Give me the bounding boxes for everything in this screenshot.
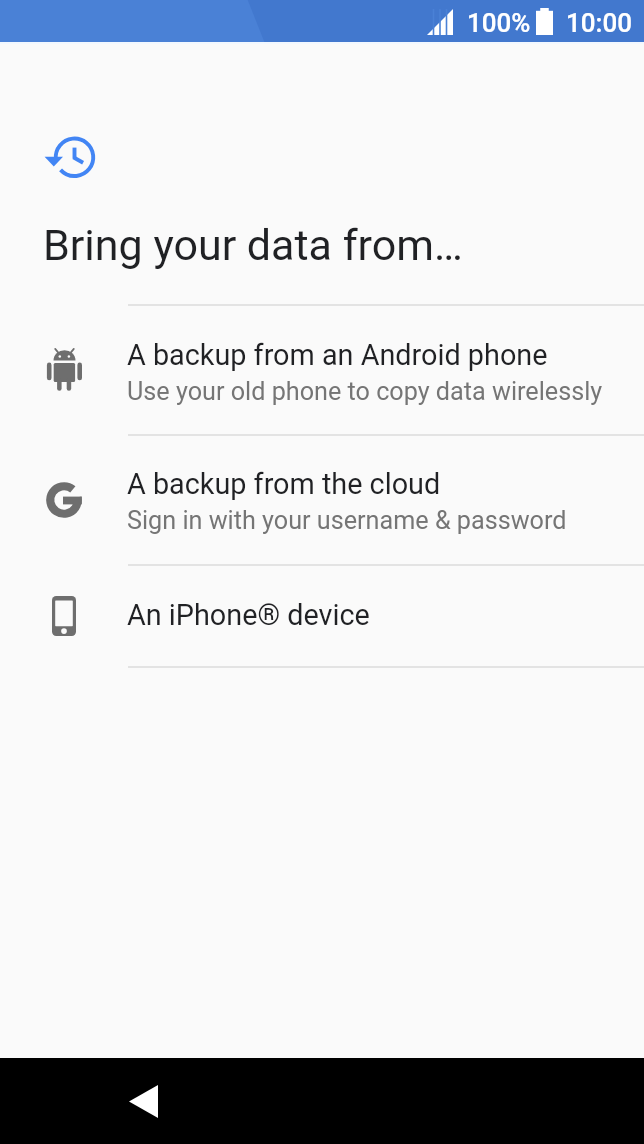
button[interactable]: Back: [107, 1065, 179, 1137]
button[interactable]: An iPhone® device: [0, 566, 644, 666]
staticText: A backup from the cloud: [127, 467, 441, 501]
staticText: Sign in with your username & password: [127, 506, 567, 536]
staticText: 100%: [467, 8, 531, 38]
staticText: A backup from an Android phone: [127, 338, 548, 372]
staticText: Use your old phone to copy data wireless…: [127, 377, 603, 407]
button[interactable]: A backup from an Android phone: [0, 306, 644, 434]
staticText: Bring your data from…: [43, 220, 463, 270]
button[interactable]: A backup from the cloud: [0, 436, 644, 564]
staticText: An iPhone® device: [127, 598, 370, 632]
staticText: 10:00: [566, 8, 633, 38]
